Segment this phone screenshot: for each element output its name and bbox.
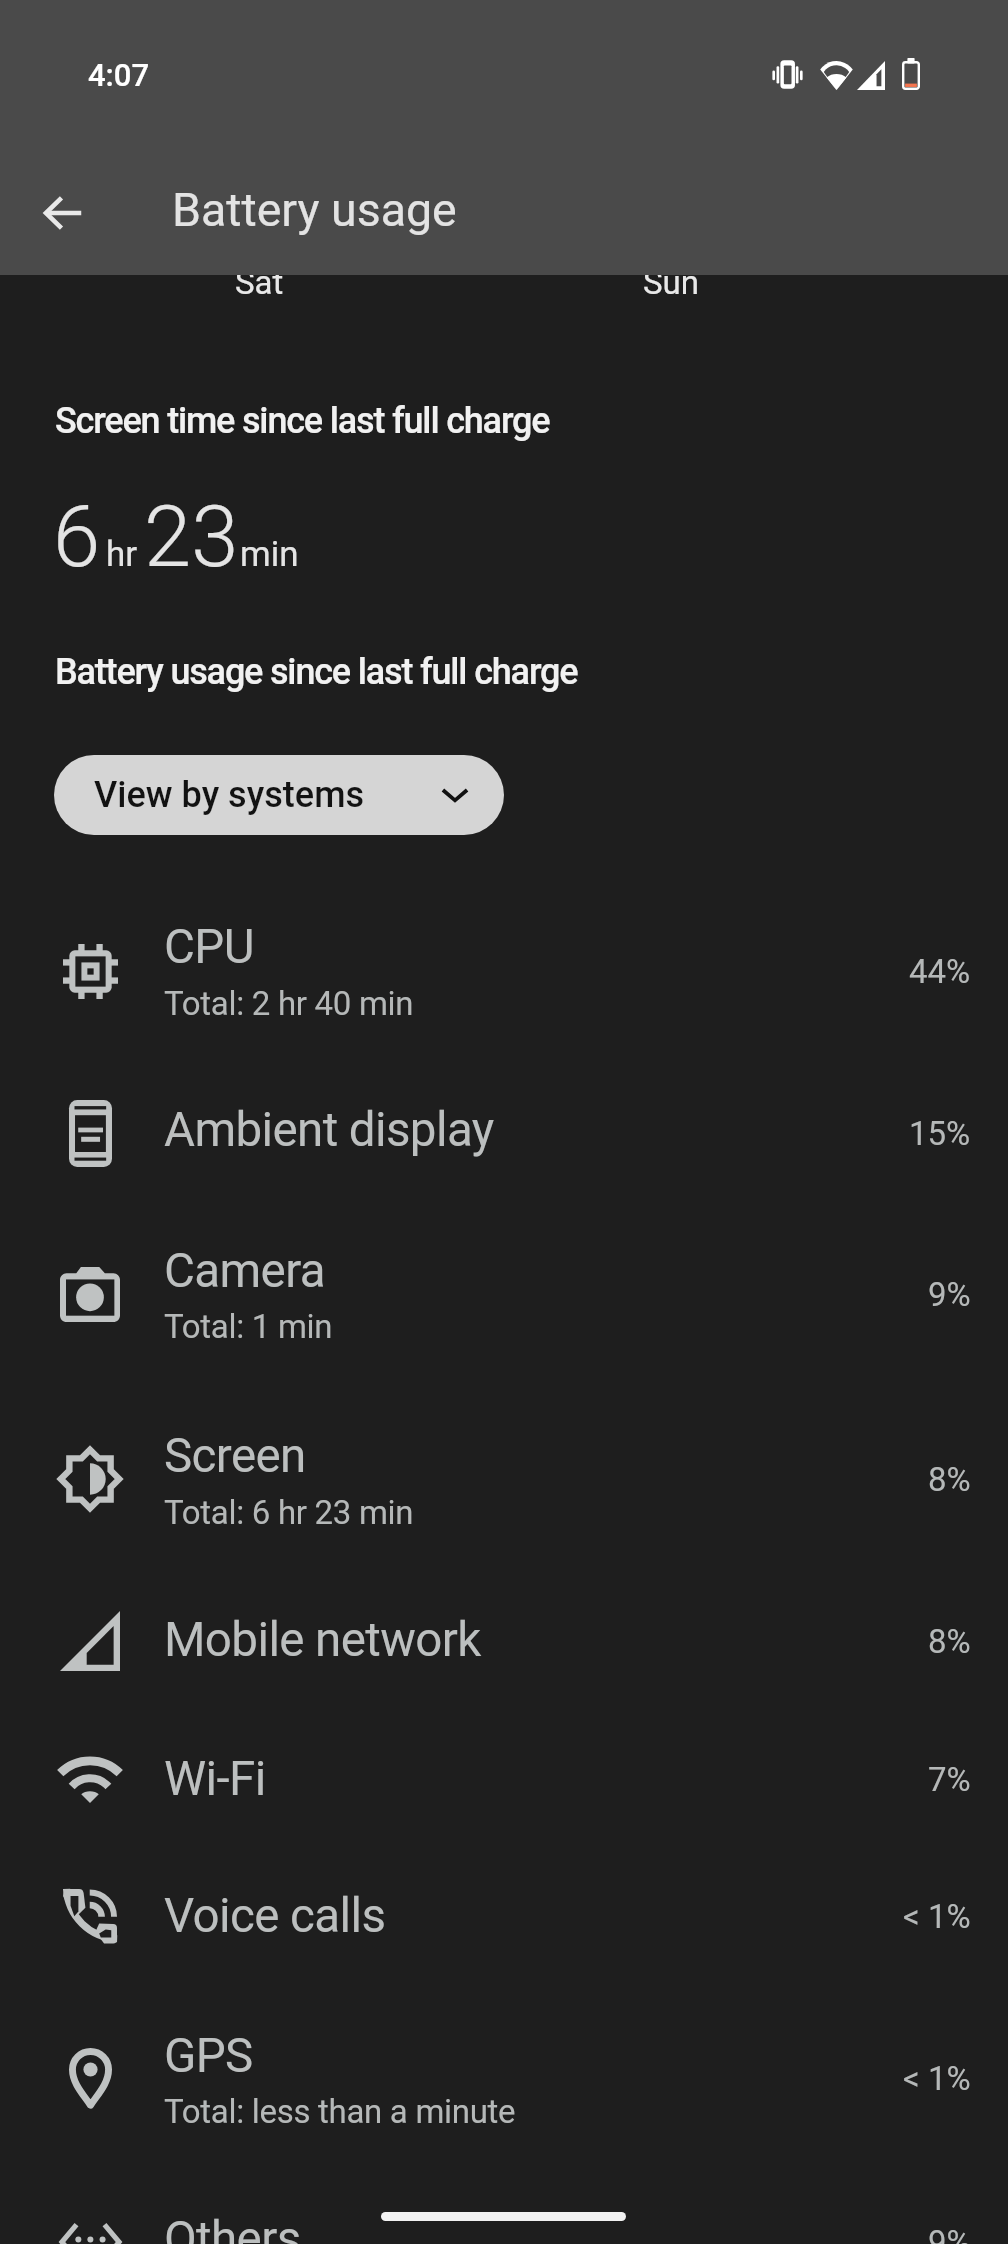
button[interactable] bbox=[0, 891, 1008, 1051]
button[interactable] bbox=[0, 1053, 1008, 1213]
staticText: Wi-Fi bbox=[164, 1751, 266, 1807]
staticText: CPU bbox=[164, 919, 254, 975]
staticText: 44% bbox=[909, 952, 971, 991]
button[interactable] bbox=[0, 1214, 1008, 1374]
staticText: hr bbox=[106, 534, 138, 575]
staticText: Sat bbox=[235, 263, 284, 302]
staticText: Sun bbox=[643, 263, 700, 302]
staticText: 9% bbox=[928, 2223, 971, 2244]
staticText: 9% bbox=[928, 1275, 971, 1314]
staticText: Total: less than a minute bbox=[164, 2092, 516, 2131]
staticText: Screen time since last full charge bbox=[55, 400, 550, 442]
staticText: Total: 1 min bbox=[164, 1307, 333, 1346]
button[interactable] bbox=[0, 1399, 1008, 1559]
button[interactable]: Back bbox=[27, 177, 99, 249]
staticText: 8% bbox=[928, 1460, 971, 1499]
button[interactable] bbox=[0, 1561, 1008, 1721]
staticText: Screen bbox=[164, 1428, 306, 1484]
staticText: GPS bbox=[164, 2028, 253, 2084]
button[interactable]: View by systems bbox=[54, 755, 504, 835]
staticText: Battery usage bbox=[172, 183, 457, 237]
staticText: 7% bbox=[928, 1760, 971, 1799]
staticText: < 1% bbox=[903, 2059, 971, 2098]
staticText: Camera bbox=[164, 1243, 326, 1299]
staticText: 6 bbox=[53, 487, 101, 587]
staticText: 4:07 bbox=[88, 57, 150, 93]
staticText: View by systems bbox=[94, 774, 365, 816]
staticText: Total: 2 hr 40 min bbox=[164, 984, 414, 1023]
staticText: Voice calls bbox=[164, 1888, 386, 1944]
button[interactable] bbox=[0, 2162, 1008, 2244]
staticText: min bbox=[240, 534, 299, 575]
staticText: < 1% bbox=[903, 1897, 971, 1936]
button[interactable] bbox=[0, 1836, 1008, 1996]
staticText: 23 bbox=[144, 487, 239, 587]
staticText: 8% bbox=[928, 1622, 971, 1661]
staticText: Total: 6 hr 23 min bbox=[164, 1493, 414, 1532]
staticText: 15% bbox=[909, 1114, 971, 1153]
staticText: Mobile network bbox=[164, 1612, 481, 1668]
button[interactable] bbox=[0, 1998, 1008, 2158]
staticText: Ambient display bbox=[164, 1102, 494, 1158]
staticText: Others bbox=[164, 2211, 301, 2244]
staticText: Battery usage since last full charge bbox=[55, 651, 578, 693]
button[interactable] bbox=[0, 1699, 1008, 1859]
